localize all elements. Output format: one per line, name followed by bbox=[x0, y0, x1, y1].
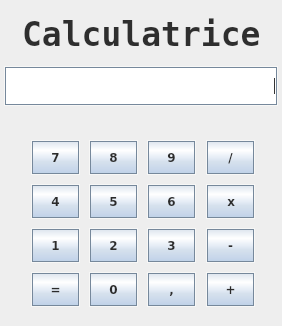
button[interactable]: = bbox=[33, 274, 78, 305]
button[interactable]: 1 bbox=[33, 230, 78, 261]
button[interactable]: 3 bbox=[149, 230, 194, 261]
button[interactable]: 4 bbox=[33, 186, 78, 217]
staticText: 0 bbox=[109, 283, 118, 297]
button[interactable]: 5 bbox=[91, 186, 136, 217]
button[interactable]: x bbox=[208, 186, 253, 217]
button[interactable]: 8 bbox=[91, 142, 136, 173]
button[interactable]: 0 bbox=[91, 274, 136, 305]
button[interactable]: 2 bbox=[91, 230, 136, 261]
staticText: x bbox=[227, 195, 235, 209]
staticText: / bbox=[228, 151, 233, 165]
button[interactable]: / bbox=[208, 142, 253, 173]
button[interactable]: + bbox=[208, 274, 253, 305]
staticText: 4 bbox=[51, 195, 60, 209]
staticText: 6 bbox=[167, 195, 176, 209]
staticText: 2 bbox=[109, 239, 118, 253]
button[interactable]: 9 bbox=[149, 142, 194, 173]
staticText: 5 bbox=[109, 195, 118, 209]
staticText: 9 bbox=[167, 151, 176, 165]
staticText: 8 bbox=[109, 151, 118, 165]
staticText: + bbox=[225, 283, 236, 297]
button[interactable]: 7 bbox=[33, 142, 78, 173]
staticText: = bbox=[50, 283, 61, 297]
button[interactable]: , bbox=[149, 274, 194, 305]
staticText: - bbox=[228, 239, 233, 253]
staticText: 1 bbox=[51, 239, 60, 253]
staticText: Calculatrice bbox=[22, 15, 261, 53]
button[interactable]: 6 bbox=[149, 186, 194, 217]
staticText: 7 bbox=[51, 151, 60, 165]
staticText: , bbox=[169, 283, 174, 297]
staticText: 3 bbox=[167, 239, 176, 253]
button[interactable] bbox=[6, 68, 276, 104]
button[interactable]: - bbox=[208, 230, 253, 261]
